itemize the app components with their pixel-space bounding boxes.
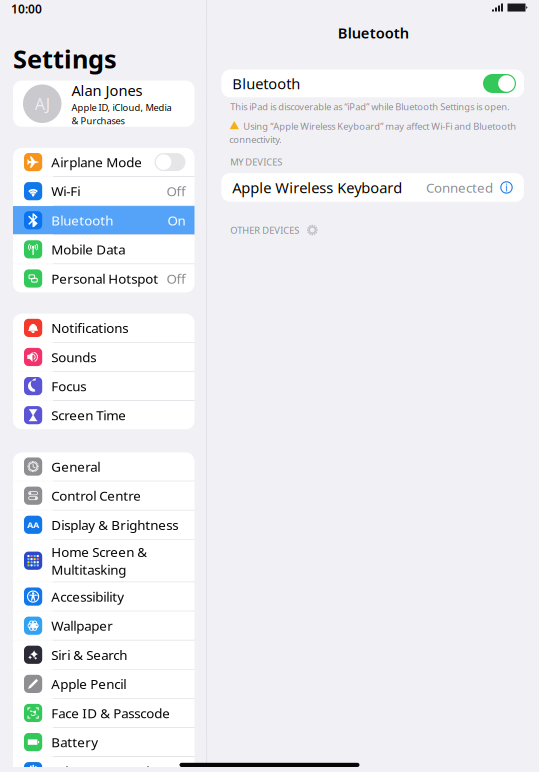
staticText: On	[167, 211, 185, 229]
staticText: Wi-Fi	[51, 182, 80, 200]
button[interactable]: Sounds	[13, 343, 194, 371]
staticText: Siri & Search	[51, 646, 127, 664]
staticText: Apple ID, iCloud, Media	[71, 101, 171, 113]
staticText: This iPad is discoverable as “iPad” whil…	[230, 100, 510, 113]
button[interactable]: Focus	[13, 372, 194, 400]
button[interactable]: Home Screen &	[13, 540, 194, 582]
staticText: Off	[166, 270, 185, 287]
button[interactable]: Bluetooth	[13, 206, 194, 234]
button[interactable]: General	[13, 452, 194, 481]
button[interactable]: AA	[13, 511, 194, 539]
button[interactable]: Privacy & Security	[13, 757, 194, 772]
staticText: Privacy & Security	[51, 762, 161, 772]
button[interactable]: Notifications	[13, 314, 194, 342]
staticText: Accessibility	[51, 588, 124, 605]
button[interactable]: Airplane Mode	[13, 148, 194, 176]
button[interactable]: Screen Time	[13, 401, 194, 429]
staticText: OTHER DEVICES	[230, 224, 299, 236]
staticText: AJ	[35, 93, 50, 114]
staticText: Battery	[51, 733, 98, 751]
button[interactable]: Wi-Fi	[13, 177, 194, 205]
staticText: 10:00	[11, 1, 42, 17]
staticText: Bluetooth	[232, 74, 300, 93]
button[interactable]: Wallpaper	[13, 611, 194, 640]
button[interactable]: Accessibility	[13, 582, 194, 611]
staticText: Multitasking	[51, 561, 126, 578]
staticText: Apple Pencil	[51, 675, 126, 693]
staticText: & Purchases	[71, 114, 124, 127]
staticText: Alan Jones	[71, 81, 142, 100]
staticText: Screen Time	[51, 406, 126, 424]
staticText: Airplane Mode	[51, 153, 142, 171]
button[interactable]: Battery	[13, 728, 194, 756]
button[interactable]: AJ	[13, 81, 194, 127]
button[interactable]: Apple Pencil	[13, 670, 194, 698]
staticText: Notifications	[51, 319, 128, 337]
button[interactable]: Apple Wireless Keyboard	[221, 173, 524, 202]
staticText: Bluetooth	[51, 211, 113, 229]
button[interactable]: Personal Hotspot	[13, 264, 194, 293]
staticText: MY DEVICES	[230, 156, 282, 168]
staticText: Sounds	[51, 348, 96, 366]
button[interactable]: Mobile Data	[13, 235, 194, 264]
staticText: Face ID & Passcode	[51, 704, 170, 722]
button[interactable]: Control Centre	[13, 481, 194, 510]
button[interactable]: Face ID & Passcode	[13, 699, 194, 727]
staticText: General	[51, 458, 100, 475]
staticText: connectivity.	[229, 133, 282, 146]
staticText: Off	[166, 182, 185, 200]
staticText: i	[505, 180, 508, 195]
button[interactable]: Siri & Search	[13, 641, 194, 669]
staticText: Display & Brightness	[51, 516, 178, 534]
staticText: AA	[27, 519, 39, 531]
staticText: Mobile Data	[51, 240, 125, 258]
staticText: Connected	[426, 179, 493, 196]
staticText: Control Centre	[51, 487, 141, 504]
staticText: Home Screen &	[51, 543, 147, 561]
staticText: Bluetooth	[338, 23, 409, 42]
staticText: Apple Wireless Keyboard	[232, 178, 402, 197]
button[interactable]: Bluetooth	[221, 69, 524, 97]
staticText: Focus	[51, 377, 86, 395]
staticText: Using “Apple Wireless Keyboard” may affe…	[243, 120, 516, 132]
staticText: Personal Hotspot	[51, 270, 158, 287]
staticText: Settings	[13, 42, 117, 75]
staticText: Wallpaper	[51, 617, 113, 634]
